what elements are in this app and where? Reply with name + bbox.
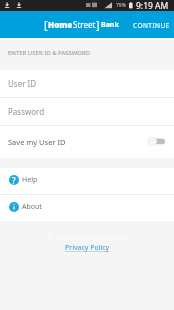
staticText: Save my User ID [8, 137, 66, 147]
staticText: About [22, 202, 42, 212]
staticText: Password [8, 106, 45, 117]
staticText: ? [12, 175, 16, 185]
button[interactable]: User ID [0, 70, 174, 97]
staticText: ] [96, 17, 100, 32]
staticText: ENTER USER ID & PASSWORD [8, 49, 91, 57]
staticText: Privacy Policy [65, 243, 110, 253]
staticText: CONTINUE [133, 21, 170, 30]
button[interactable]: ? [0, 168, 174, 194]
staticText: Help [22, 175, 38, 185]
button[interactable]: CONTINUE [127, 14, 174, 35]
staticText: Bank [101, 20, 119, 30]
button[interactable]: Save my User ID [0, 126, 174, 158]
button[interactable]: About [0, 195, 174, 221]
staticText: Home [48, 19, 73, 30]
staticText: Street [73, 19, 96, 30]
staticText: 9:19 AM [136, 0, 169, 11]
button[interactable]: Privacy Policy [62, 242, 113, 254]
button[interactable]: Password [0, 98, 174, 125]
staticText: User ID [8, 78, 37, 89]
staticText: 79% [116, 2, 126, 9]
staticText: [ [44, 17, 48, 32]
